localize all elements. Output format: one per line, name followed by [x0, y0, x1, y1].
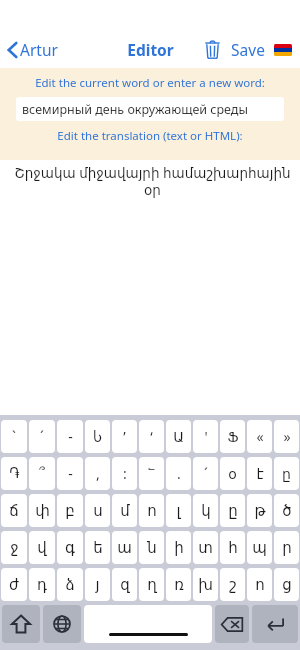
- staticText: ´: [204, 464, 208, 483]
- button[interactable]: ծ: [274, 494, 299, 527]
- staticText: -: [68, 427, 73, 446]
- button[interactable]: պ: [247, 531, 272, 564]
- staticText: -: [68, 464, 73, 483]
- staticText: ե: [93, 539, 103, 556]
- staticText: ‘: [150, 427, 153, 446]
- button[interactable]: ,: [85, 457, 110, 490]
- button[interactable]: բ: [57, 494, 83, 527]
- staticText: ժ: [9, 576, 19, 593]
- button[interactable]: ձ: [57, 568, 83, 601]
- staticText: տ: [198, 539, 213, 556]
- button[interactable]: Space: [84, 605, 212, 643]
- button[interactable]: շ: [220, 568, 245, 601]
- button[interactable]: դ: [29, 568, 55, 601]
- button[interactable]: :: [112, 457, 137, 490]
- staticText: Շրջակա միջավայրի համաշխարհային օր: [5, 164, 300, 198]
- staticText: Edit the current word or enter a new wor…: [35, 75, 265, 91]
- button[interactable]: ´: [193, 457, 218, 490]
- staticText: ց: [282, 576, 292, 593]
- staticText: գ: [65, 539, 75, 556]
- button[interactable]: Return: [252, 605, 298, 643]
- button[interactable]: ո: [247, 568, 272, 601]
- staticText: ’: [123, 427, 126, 446]
- staticText: Edit the translation (text or HTML):: [57, 128, 243, 144]
- staticText: պ: [252, 539, 267, 556]
- button[interactable]: մ: [112, 494, 137, 527]
- staticText: խ: [198, 576, 213, 593]
- button[interactable]: ի: [166, 531, 191, 564]
- button[interactable]: ց: [274, 568, 299, 601]
- button[interactable]: ՞: [29, 457, 55, 490]
- button[interactable]: ը: [274, 457, 299, 490]
- staticText: օ: [228, 466, 237, 482]
- button[interactable]: թ: [247, 494, 272, 527]
- button[interactable]: Change keyboard language: [43, 605, 81, 643]
- button[interactable]: ռ: [166, 568, 191, 601]
- button[interactable]: Delete: [199, 37, 226, 62]
- button[interactable]: Ֆ: [220, 420, 245, 453]
- button[interactable]: ՟: [139, 457, 164, 490]
- button[interactable]: կ: [193, 494, 218, 527]
- staticText: ռ: [174, 576, 184, 593]
- button[interactable]: տ: [193, 531, 218, 564]
- staticText: ձ: [65, 576, 75, 593]
- button[interactable]: ղ: [139, 568, 164, 601]
- staticText: ս: [93, 502, 103, 519]
- button[interactable]: ն: [139, 531, 164, 564]
- staticText: ՟: [148, 466, 155, 482]
- button[interactable]: ´: [29, 420, 55, 453]
- button[interactable]: զ: [112, 568, 137, 601]
- button[interactable]: խ: [193, 568, 218, 601]
- button[interactable]: Editor: [121, 35, 180, 64]
- button[interactable]: ճ: [1, 494, 27, 527]
- button[interactable]: Շրջակա միջավայրի համաշխարհային օր: [0, 160, 300, 415]
- button[interactable]: փ: [29, 494, 55, 527]
- staticText: լ: [176, 502, 181, 519]
- button[interactable]: ր: [274, 531, 299, 564]
- button[interactable]: Ա: [166, 420, 191, 453]
- staticText: ջ: [10, 539, 19, 556]
- button[interactable]: ժ: [1, 568, 27, 601]
- staticText: Ֆ: [227, 429, 239, 445]
- button[interactable]: ‘: [139, 420, 164, 453]
- button[interactable]: հ: [220, 531, 245, 564]
- button[interactable]: Artur: [0, 35, 66, 64]
- button[interactable]: Ⴑ: [85, 420, 110, 453]
- button[interactable]: ’: [112, 420, 137, 453]
- staticText: «: [256, 427, 264, 446]
- button[interactable]: ջ: [1, 531, 27, 564]
- button[interactable]: ֏: [1, 457, 27, 490]
- button[interactable]: »: [274, 420, 299, 453]
- staticText: դ: [37, 576, 47, 593]
- staticText: ո: [255, 576, 265, 593]
- button[interactable]: -: [57, 420, 83, 453]
- button[interactable]: .: [166, 457, 191, 490]
- staticText: ո: [147, 502, 157, 519]
- staticText: Ⴑ: [93, 429, 102, 445]
- button[interactable]: ': [193, 420, 218, 453]
- button[interactable]: ո: [139, 494, 164, 527]
- button[interactable]: всемирный день окружающей среды: [16, 97, 284, 121]
- button[interactable]: ա: [112, 531, 137, 564]
- button[interactable]: գ: [57, 531, 83, 564]
- button[interactable]: -: [57, 457, 83, 490]
- staticText: Artur: [20, 39, 58, 60]
- staticText: :: [123, 464, 127, 483]
- button[interactable]: Backspace: [215, 605, 249, 643]
- button[interactable]: Language: Armenian: [272, 40, 300, 60]
- button[interactable]: վ: [29, 531, 55, 564]
- staticText: ծ: [282, 502, 292, 519]
- button[interactable]: ը: [220, 494, 245, 527]
- button[interactable]: «: [247, 420, 272, 453]
- button[interactable]: ս: [85, 494, 110, 527]
- button[interactable]: լ: [166, 494, 191, 527]
- button[interactable]: Save: [228, 35, 268, 64]
- staticText: կ: [201, 502, 211, 519]
- button[interactable]: ե: [85, 531, 110, 564]
- staticText: .: [177, 464, 181, 483]
- button[interactable]: Shift: [2, 605, 40, 643]
- button[interactable]: յ: [85, 568, 110, 601]
- button[interactable]: `: [1, 420, 27, 453]
- button[interactable]: օ: [220, 457, 245, 490]
- button[interactable]: է: [247, 457, 272, 490]
